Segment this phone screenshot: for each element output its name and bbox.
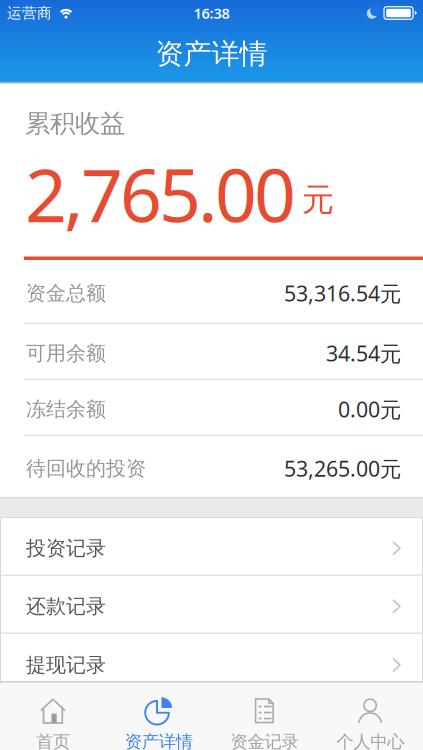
button[interactable]: 个人中心 xyxy=(317,683,423,750)
staticText: 投资记录 xyxy=(26,536,106,561)
staticText: 累积收益 xyxy=(25,108,125,139)
staticText: 首页 xyxy=(36,731,70,750)
staticText: 资产详情 xyxy=(155,37,267,71)
staticText: 还款记录 xyxy=(26,594,106,619)
button[interactable]: 提现记录 xyxy=(0,634,423,692)
staticText: 元 xyxy=(302,180,334,219)
staticText: 资金总额 xyxy=(26,281,106,306)
staticText: 34.54元 xyxy=(326,339,401,367)
staticText: 0.00元 xyxy=(338,395,401,423)
staticText: 提现记录 xyxy=(26,653,106,677)
button[interactable]: 首页 xyxy=(0,683,106,750)
button[interactable]: 资产详情 xyxy=(106,683,212,750)
staticText: 资金记录 xyxy=(230,731,298,750)
staticText: 53,265.00元 xyxy=(284,454,401,483)
button[interactable]: 资金记录 xyxy=(211,683,317,750)
staticText: 可用余额 xyxy=(26,341,106,366)
staticText: 运营商 xyxy=(7,4,52,22)
button[interactable]: 还款记录 xyxy=(0,576,423,634)
staticText: 个人中心 xyxy=(336,731,404,750)
staticText: 待回收的投资 xyxy=(26,456,146,481)
staticText: 16:38 xyxy=(193,3,229,23)
button[interactable]: 投资记录 xyxy=(0,518,423,576)
staticText: 2,765.00 xyxy=(25,145,296,242)
staticText: 冻结余额 xyxy=(26,397,106,422)
staticText: 53,316.54元 xyxy=(284,279,401,307)
staticText: 资产详情 xyxy=(125,731,193,750)
